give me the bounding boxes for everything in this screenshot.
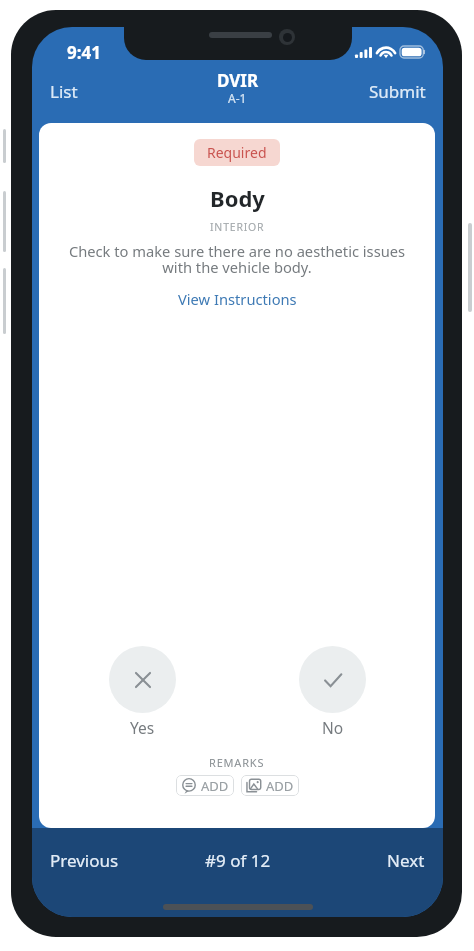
- staticText: #9 of 12: [205, 849, 271, 872]
- button[interactable]: List: [40, 72, 88, 111]
- button[interactable]: Yes: [109, 646, 176, 738]
- staticText: A-1: [228, 90, 247, 106]
- staticText: Submit: [369, 80, 426, 103]
- staticText: Next: [387, 849, 425, 872]
- staticText: Yes: [130, 717, 155, 738]
- button[interactable]: No: [299, 646, 366, 738]
- staticText: 9:41: [67, 41, 101, 64]
- staticText: INTERIOR: [210, 220, 265, 234]
- button[interactable]: Next: [377, 843, 435, 878]
- button[interactable]: Submit: [359, 72, 436, 111]
- staticText: ADD: [266, 777, 294, 795]
- staticText: REMARKS: [209, 755, 265, 770]
- staticText: DVIR: [217, 69, 259, 92]
- staticText: No: [322, 717, 344, 738]
- staticText: View Instructions: [178, 289, 297, 309]
- button[interactable]: ADD: [176, 775, 234, 796]
- staticText: Check to make sure there are no aestheti…: [61, 241, 413, 278]
- button[interactable]: Required: [194, 139, 280, 166]
- button[interactable]: Previous: [40, 843, 129, 878]
- staticText: Body: [210, 183, 265, 213]
- staticText: Previous: [50, 849, 119, 872]
- staticText: ADD: [201, 777, 229, 795]
- staticText: Required: [207, 143, 267, 162]
- button[interactable]: View Instructions: [166, 286, 309, 312]
- staticText: List: [50, 80, 78, 103]
- button[interactable]: ADD: [241, 775, 299, 796]
